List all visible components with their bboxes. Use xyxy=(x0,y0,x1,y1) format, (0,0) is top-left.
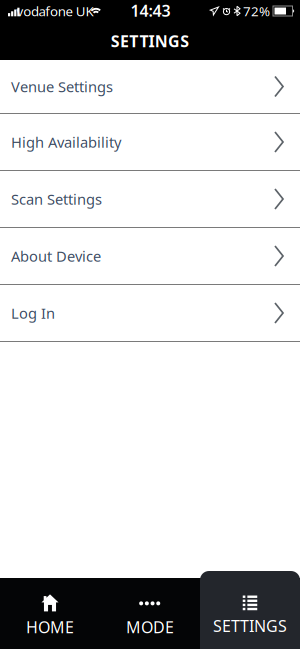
button[interactable]: Log In xyxy=(0,285,300,342)
staticText: About Device xyxy=(11,246,101,266)
button[interactable]: SETTINGS xyxy=(200,571,300,649)
staticText: HOME xyxy=(26,616,74,638)
button[interactable]: HOME xyxy=(2,585,98,647)
staticText: vodafone UK xyxy=(16,2,93,20)
staticText: Scan Settings xyxy=(11,189,102,209)
button[interactable]: High Availability xyxy=(0,114,300,171)
staticText: 72% xyxy=(243,2,270,20)
staticText: SETTINGS xyxy=(213,615,287,636)
staticText: High Availability xyxy=(11,132,121,152)
button[interactable]: Scan Settings xyxy=(0,171,300,228)
staticText: Log In xyxy=(11,303,55,323)
button[interactable]: About Device xyxy=(0,228,300,285)
staticText: 14:43 xyxy=(130,0,170,21)
staticText: Venue Settings xyxy=(11,77,113,96)
staticText: MODE xyxy=(126,616,174,638)
button[interactable]: MODE xyxy=(102,585,198,647)
staticText: SETTINGS xyxy=(111,30,189,52)
button[interactable]: Venue Settings xyxy=(0,60,300,114)
